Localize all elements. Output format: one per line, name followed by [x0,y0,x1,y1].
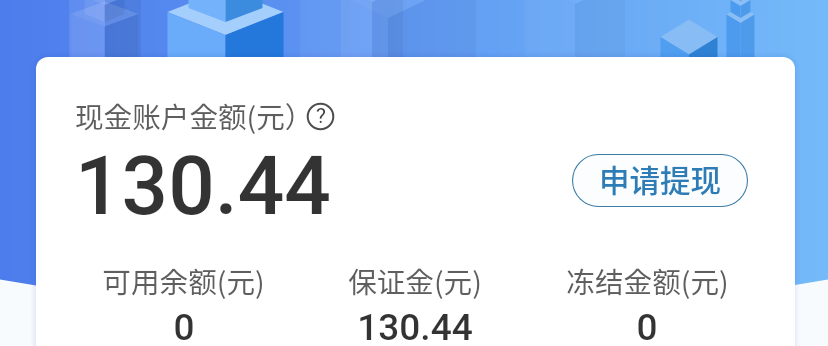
staticText: 0 [636,306,658,346]
staticText: 130.44 [75,138,331,234]
staticText: 保证金(元) [348,260,482,301]
staticText: 0 [173,306,195,346]
staticText: 可用余额(元) [102,260,265,301]
staticText: 申请提现 [599,157,721,201]
staticText: 130.44 [357,306,473,346]
staticText: 冻结金额(元) [566,260,729,301]
staticText: 现金账户金额(元） [75,95,314,136]
button[interactable]: 帮助说明 [307,103,334,130]
staticText: ? [316,104,326,129]
button[interactable]: 申请提现 [572,154,748,207]
